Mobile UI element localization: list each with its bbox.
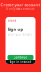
staticText: Sign in instead [9, 60, 31, 64]
staticText: It only takes a minute [6, 7, 35, 11]
staticText: Create your account [0, 2, 40, 7]
button[interactable]: Sign in instead [5, 60, 35, 64]
staticText: Sign up [7, 26, 23, 32]
button[interactable]: Continue [7, 55, 33, 60]
staticText: Continue [13, 56, 27, 59]
staticText: brand [7, 19, 16, 22]
staticText: Enter your details [7, 33, 31, 36]
